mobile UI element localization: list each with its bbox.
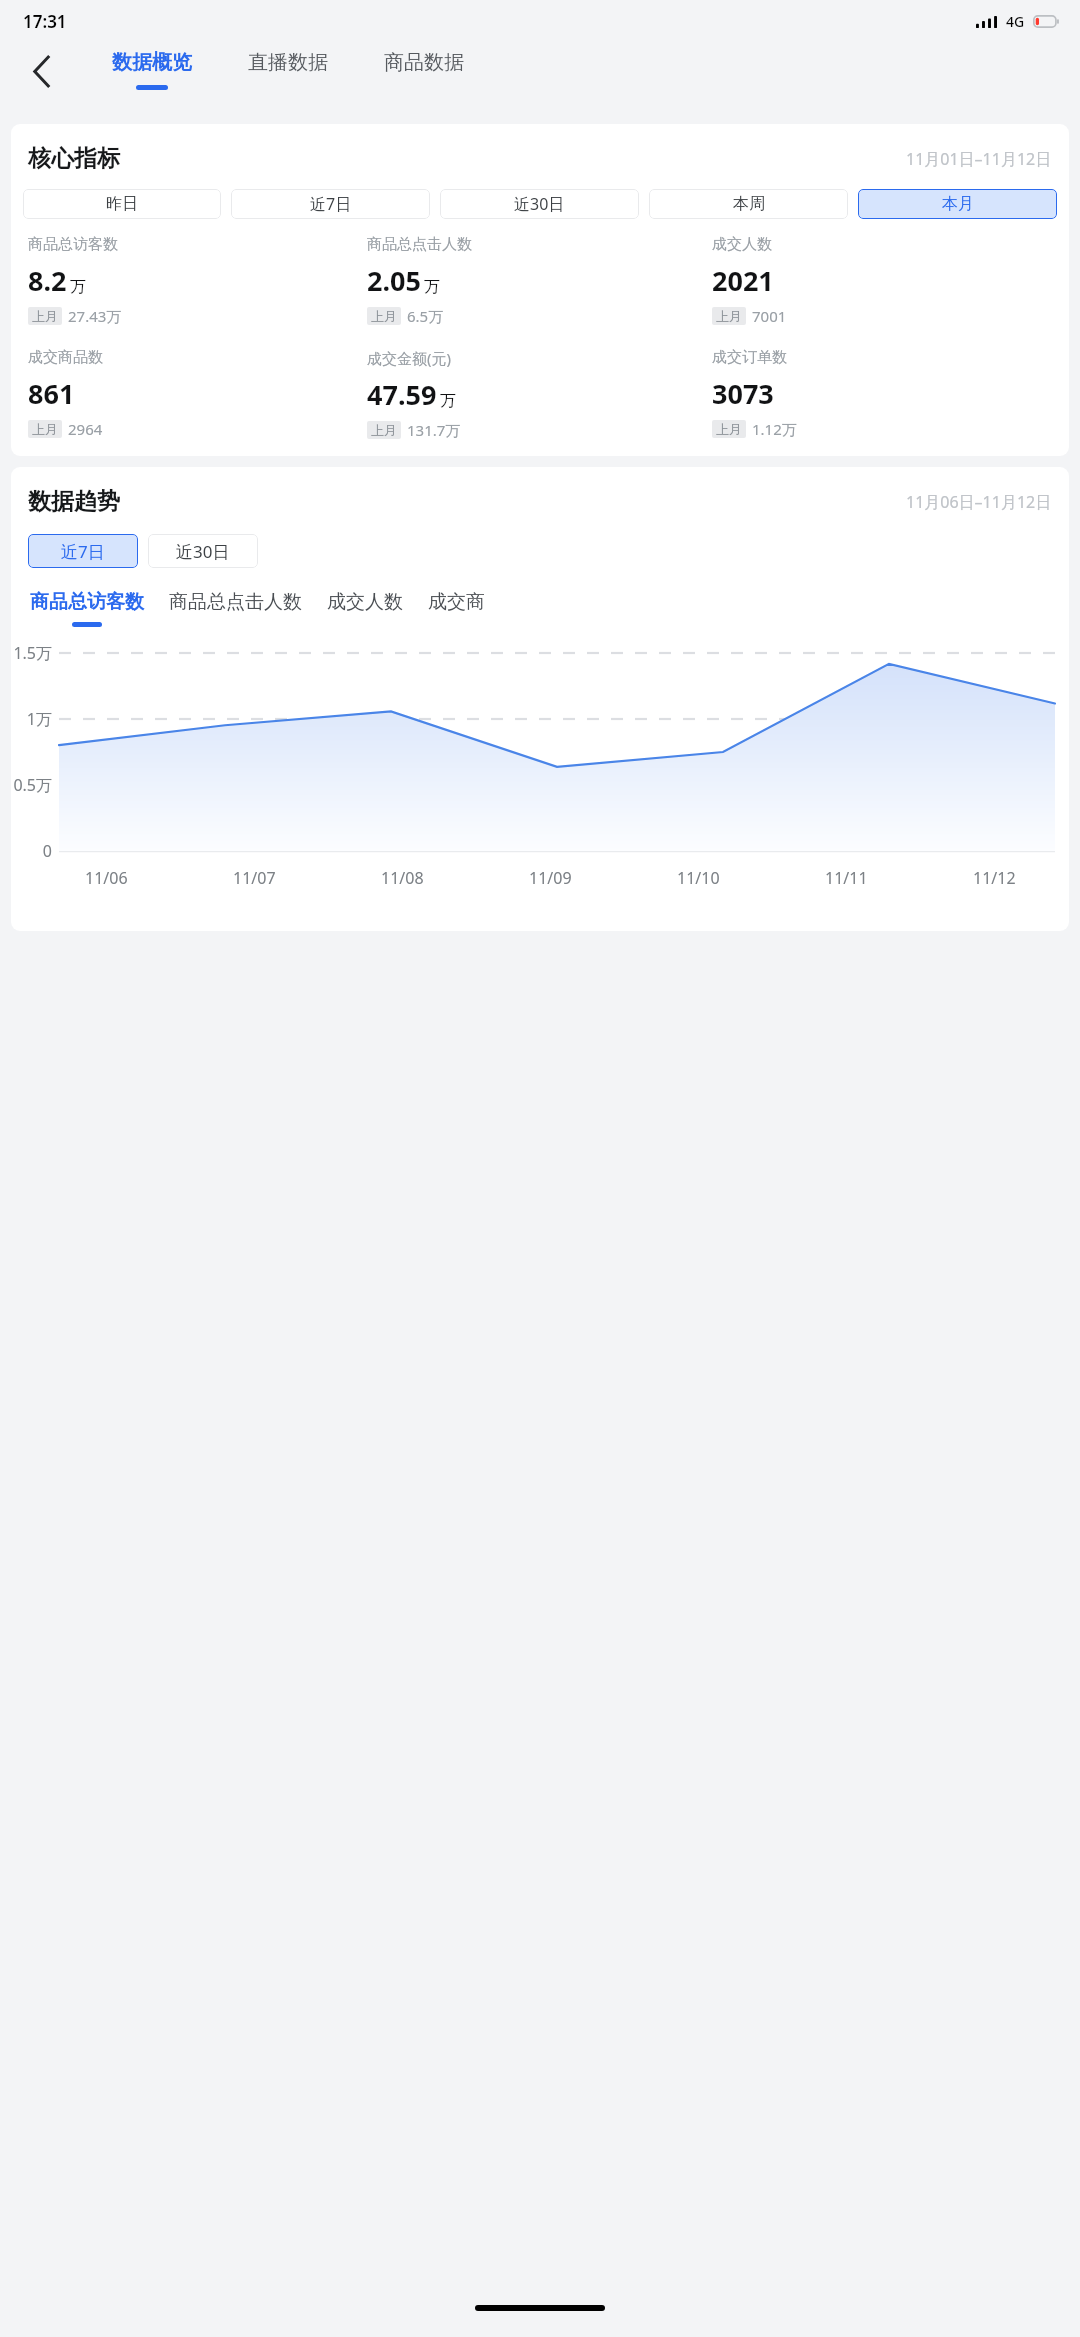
button[interactable]: 商品总点击人数 [367, 235, 712, 326]
staticText: 1万 [26, 708, 52, 730]
staticText: 11/07 [233, 867, 276, 889]
staticText: 1.12万 [752, 419, 797, 439]
staticText: 万 [440, 391, 456, 411]
button[interactable]: 近30日 [148, 534, 258, 568]
staticText: 11/10 [677, 867, 720, 889]
button[interactable]: 成交商品数 [23, 348, 367, 439]
staticText: 成交订单数 [712, 348, 787, 367]
button[interactable]: 数据概览 [108, 48, 196, 92]
staticText: 本周 [733, 194, 765, 214]
staticText: 11/06 [85, 867, 128, 889]
staticText: 2021 [712, 262, 774, 299]
button[interactable]: 近7日 [28, 534, 138, 568]
button[interactable]: 成交订单数 [712, 348, 1057, 439]
staticText: 17:31 [23, 10, 67, 33]
staticText: 商品总点击人数 [367, 235, 472, 254]
staticText: 0 [42, 840, 52, 862]
staticText: 万 [424, 277, 440, 297]
staticText: 近7日 [310, 193, 352, 215]
button[interactable]: 本月 [858, 189, 1057, 219]
button[interactable]: 近7日 [231, 189, 430, 219]
staticText: 上月 [371, 422, 397, 438]
staticText: 上月 [716, 308, 742, 324]
button[interactable]: 昨日 [23, 189, 221, 219]
button[interactable]: Back [12, 42, 70, 100]
staticText: 直播数据 [248, 50, 328, 75]
staticText: 6.5万 [407, 306, 444, 326]
button[interactable]: 本周 [649, 189, 848, 219]
staticText: 近30日 [176, 540, 230, 563]
staticText: 3073 [712, 375, 774, 412]
button[interactable]: 商品数据 [380, 48, 468, 92]
staticText: 核心指标 [28, 144, 120, 173]
staticText: 万 [70, 277, 86, 297]
staticText: 商品总访客数 [30, 590, 144, 614]
staticText: 27.43万 [68, 306, 122, 326]
staticText: 2.05 [367, 262, 421, 299]
staticText: 上月 [32, 308, 58, 324]
button[interactable]: 商品总访客数 [23, 235, 367, 326]
staticText: 本月 [942, 194, 974, 214]
staticText: 商品总访客数 [28, 235, 118, 254]
staticText: 近7日 [61, 540, 105, 563]
staticText: 11月06日–11月12日 [906, 491, 1052, 513]
staticText: 7001 [752, 306, 787, 326]
button[interactable]: 直播数据 [244, 48, 332, 92]
staticText: 成交人数 [712, 235, 772, 254]
staticText: 上月 [32, 421, 58, 437]
staticText: 近30日 [514, 193, 565, 215]
staticText: 11/08 [381, 867, 424, 889]
staticText: 成交金额(元) [367, 348, 452, 368]
staticText: 成交商 [428, 590, 485, 614]
button[interactable]: 商品总访客数 [28, 590, 146, 627]
staticText: 11/11 [825, 867, 868, 889]
staticText: 11月01日–11月12日 [906, 148, 1052, 170]
staticText: 861 [28, 375, 75, 412]
button[interactable]: 成交商 [426, 590, 487, 627]
button[interactable]: 商品总点击人数 [167, 590, 304, 627]
button[interactable]: 近30日 [440, 189, 639, 219]
staticText: 商品数据 [384, 50, 464, 75]
staticText: 4G [1006, 12, 1025, 31]
staticText: 成交商品数 [28, 348, 103, 367]
button[interactable]: 成交人数 [712, 235, 1057, 326]
button[interactable]: 成交金额(元) [367, 348, 712, 440]
staticText: 11/09 [529, 867, 572, 889]
staticText: 1.5万 [13, 642, 52, 664]
staticText: 商品总点击人数 [169, 590, 302, 614]
staticText: 昨日 [106, 194, 138, 214]
staticText: 上月 [371, 308, 397, 324]
staticText: 8.2 [28, 262, 67, 299]
staticText: 成交人数 [327, 590, 403, 614]
staticText: 47.59 [367, 376, 437, 413]
staticText: 0.5万 [13, 774, 52, 796]
staticText: 数据概览 [112, 50, 192, 75]
staticText: 数据趋势 [28, 487, 120, 516]
staticText: 上月 [716, 421, 742, 437]
staticText: 2964 [68, 419, 103, 439]
button[interactable]: 成交人数 [325, 590, 405, 627]
staticText: 11/12 [973, 867, 1016, 889]
staticText: 131.7万 [407, 420, 461, 440]
